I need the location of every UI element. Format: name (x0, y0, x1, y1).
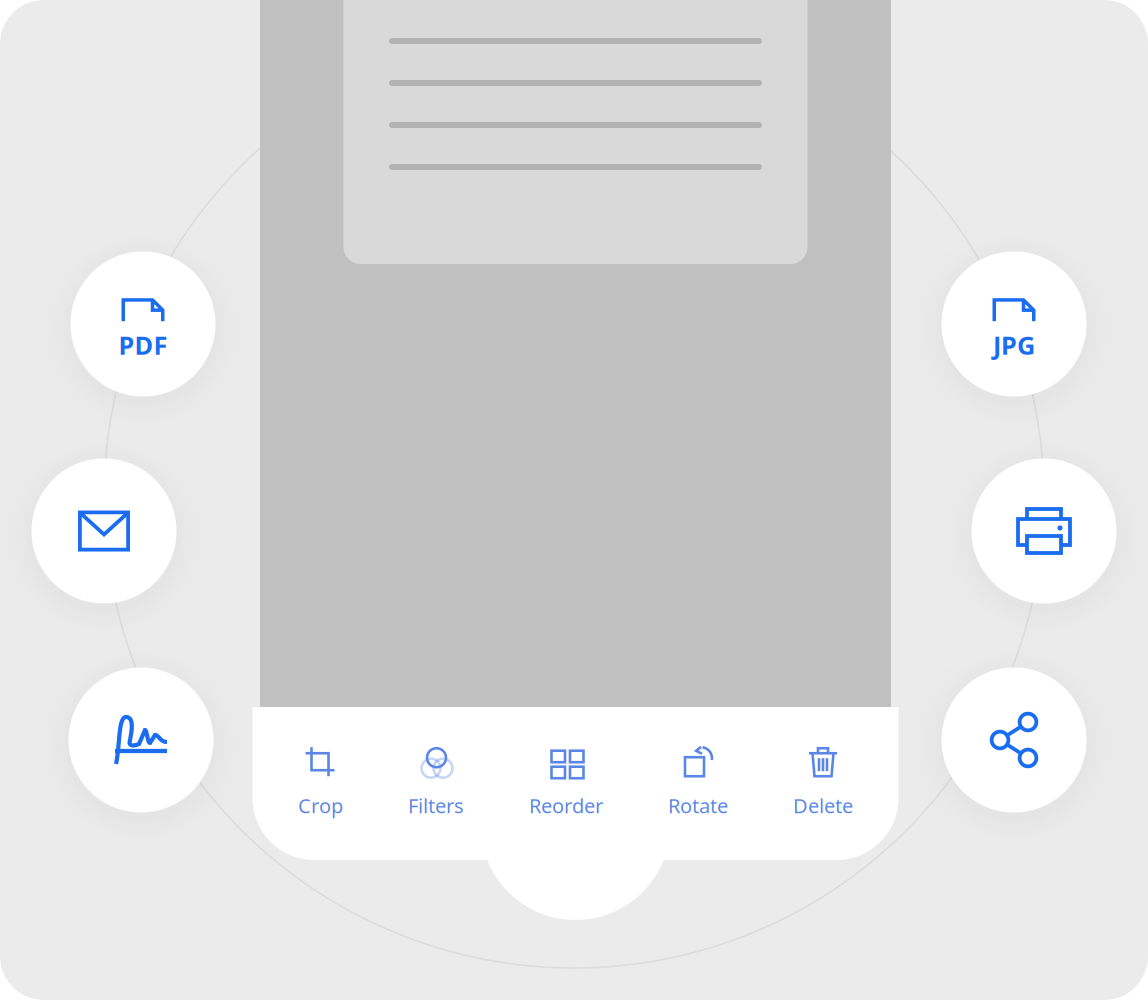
button[interactable]: Email (31, 458, 176, 603)
staticText: Filters (408, 792, 464, 819)
staticText: Delete (793, 792, 853, 819)
staticText: PDF (118, 328, 167, 362)
staticText: Crop (298, 792, 343, 819)
button[interactable]: Crop (292, 735, 349, 829)
button[interactable]: Share (941, 667, 1086, 812)
button[interactable]: Export as JPG (941, 251, 1086, 396)
button[interactable]: Print (971, 458, 1116, 603)
button[interactable]: Rotate (662, 735, 734, 829)
staticText: Reorder (529, 792, 603, 819)
button[interactable]: Delete (787, 735, 859, 829)
button[interactable]: Filters (402, 735, 470, 829)
staticText: JPG (993, 328, 1035, 362)
button[interactable]: Reorder (523, 735, 609, 829)
button[interactable]: Sign (68, 667, 213, 812)
staticText: Rotate (668, 792, 728, 819)
button[interactable]: Export as PDF (70, 251, 215, 396)
